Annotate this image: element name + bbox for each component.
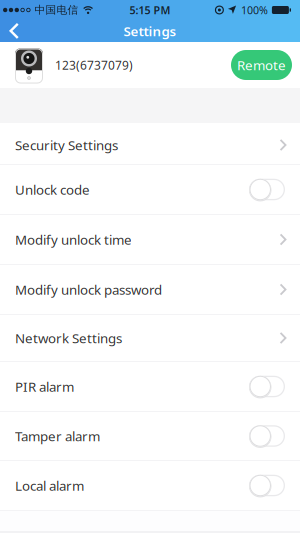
staticText: Unlock code	[15, 181, 90, 198]
staticText: 中国电信	[35, 3, 79, 16]
staticText: Settings	[123, 22, 176, 40]
button[interactable]: PIR alarm	[249, 375, 285, 398]
staticText: Network Settings	[15, 329, 122, 347]
staticText: Security Settings	[15, 136, 118, 154]
staticText: Tamper alarm	[15, 427, 100, 445]
staticText: Local alarm	[15, 477, 84, 494]
staticText: 5:15 PM	[129, 3, 170, 17]
button[interactable]: Local alarm	[249, 474, 285, 497]
button[interactable]: Network Settings	[0, 315, 300, 362]
staticText: Modify unlock time	[15, 231, 132, 248]
button[interactable]: Modify unlock password	[0, 265, 300, 315]
button[interactable]: Unlock code	[249, 178, 285, 201]
button[interactable]: Tamper alarm	[249, 425, 285, 447]
staticText: Remote	[237, 56, 286, 74]
staticText: 100%	[241, 3, 268, 17]
button[interactable]: Modify unlock time	[0, 215, 300, 265]
button[interactable]: Security Settings	[0, 123, 300, 165]
staticText: Modify unlock password	[15, 281, 162, 298]
button[interactable]: Remote	[231, 50, 292, 80]
button[interactable]: Back	[0, 20, 27, 42]
staticText: 123(6737079)	[55, 57, 133, 73]
staticText: PIR alarm	[15, 378, 74, 395]
